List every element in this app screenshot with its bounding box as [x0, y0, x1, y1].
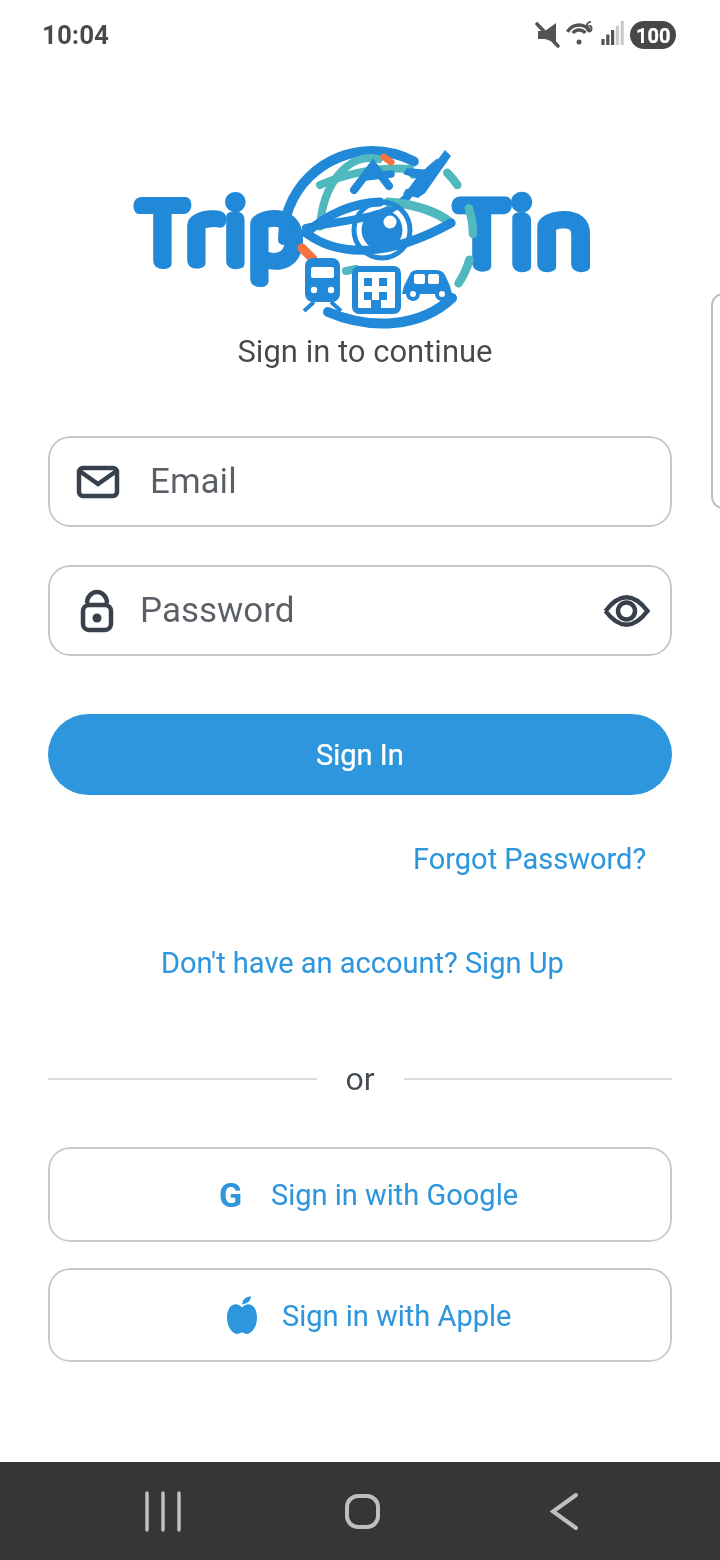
- button[interactable]: [600, 587, 652, 635]
- staticText: Sign in with Google: [271, 1178, 519, 1212]
- staticText: Don't have an account? Sign Up: [161, 946, 564, 980]
- staticText: or: [0, 1060, 720, 1098]
- staticText: Trip: [136, 154, 303, 316]
- staticText: 100: [636, 24, 671, 47]
- button[interactable]: [514, 1462, 614, 1560]
- button[interactable]: Password: [48, 565, 672, 656]
- staticText: Forgot Password?: [413, 842, 647, 876]
- staticText: Sign in with Apple: [282, 1299, 512, 1333]
- staticText: 6: [585, 19, 594, 35]
- staticText: Tin: [454, 152, 593, 322]
- staticText: Tin: [454, 152, 593, 322]
- button[interactable]: [113, 1462, 213, 1560]
- button[interactable]: Sign In: [48, 714, 672, 795]
- staticText: Sign In: [316, 738, 404, 772]
- button[interactable]: Forgot Password?: [413, 842, 647, 876]
- staticText: Password: [140, 590, 295, 631]
- button[interactable]: Sign in with Apple: [48, 1268, 672, 1362]
- button[interactable]: Don't have an account? Sign Up: [161, 946, 564, 980]
- staticText: 10:04: [42, 20, 110, 50]
- staticText: Email: [150, 461, 237, 502]
- button[interactable]: G: [48, 1147, 672, 1242]
- staticText: G: [219, 1175, 243, 1215]
- button[interactable]: Email: [48, 436, 672, 527]
- staticText: Trip: [136, 154, 303, 316]
- staticText: Sign in to continue: [5, 333, 720, 369]
- button[interactable]: [312, 1462, 412, 1560]
